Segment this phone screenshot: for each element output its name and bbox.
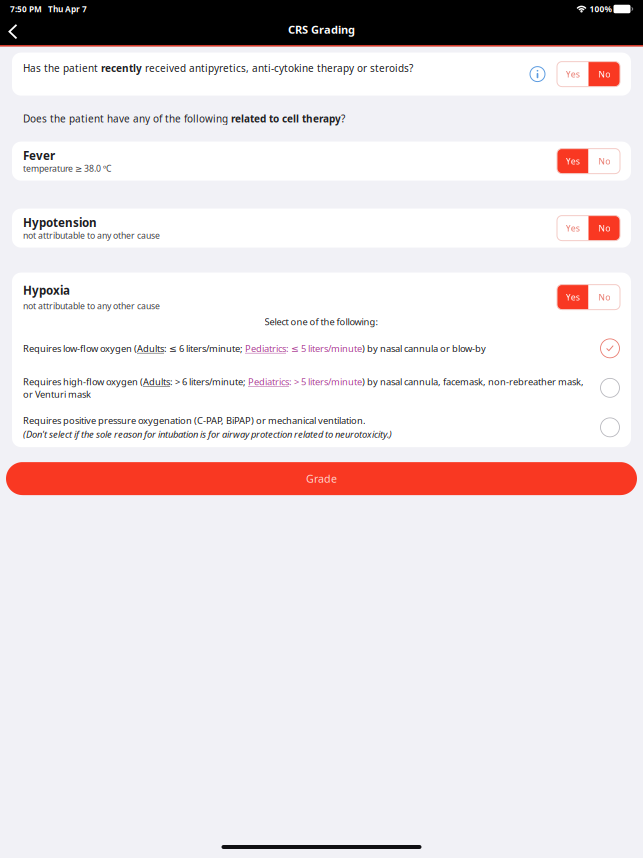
button[interactable]: Back xyxy=(0,18,26,44)
button[interactable]: Requires low-flow oxygen (Adults: ≤ 6 li… xyxy=(23,329,620,368)
button[interactable]: Grade xyxy=(6,462,637,495)
staticText: Select one of the following: xyxy=(264,315,378,328)
staticText: 7:50 PM xyxy=(10,3,42,15)
staticText: Yes xyxy=(566,222,580,234)
button[interactable]: Yes xyxy=(557,285,620,310)
button[interactable]: More information xyxy=(529,66,546,83)
staticText: Does the patient have any of the followi… xyxy=(23,112,345,125)
staticText: Requires positive pressure oxygenation (… xyxy=(23,414,366,427)
button[interactable]: Requires high-flow oxygen (Adults: > 6 l… xyxy=(23,368,620,408)
staticText: (Don't select if the sole reason for int… xyxy=(23,428,392,441)
staticText: Yes xyxy=(566,68,580,80)
staticText: Thu Apr 7 xyxy=(42,3,87,15)
staticText: No xyxy=(598,68,610,80)
staticText: Hypoxia xyxy=(23,282,70,298)
button[interactable]: Yes xyxy=(557,62,620,87)
button[interactable]: Yes xyxy=(557,149,620,174)
staticText: Yes xyxy=(566,155,580,167)
staticText: Fever xyxy=(23,148,55,163)
staticText: Yes xyxy=(566,291,580,303)
staticText: temperature ≥ 38.0 ºC xyxy=(23,163,111,174)
staticText: No xyxy=(598,222,610,234)
staticText: Has the patient recently received antipy… xyxy=(23,62,413,75)
staticText: Hypotension xyxy=(23,215,97,230)
staticText: Requires low-flow oxygen (Adults: ≤ 6 li… xyxy=(23,342,486,355)
button[interactable]: Yes xyxy=(557,216,620,241)
button[interactable]: Requires positive pressure oxygenation (… xyxy=(23,408,620,447)
staticText: Requires high-flow oxygen (Adults: > 6 l… xyxy=(23,375,584,400)
staticText: not attributable to any other cause xyxy=(23,230,160,241)
staticText: 100% xyxy=(587,3,613,15)
staticText: not attributable to any other cause xyxy=(23,300,160,312)
staticText: No xyxy=(598,291,610,303)
staticText: No xyxy=(598,155,610,167)
staticText: Grade xyxy=(306,471,337,486)
staticText: CRS Grading xyxy=(288,22,355,37)
